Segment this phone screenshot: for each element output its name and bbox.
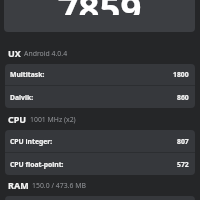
button[interactable]: CPU integer: <box>5 130 195 152</box>
staticText: Dalvik: <box>10 93 34 102</box>
staticText: UX <box>8 47 21 59</box>
staticText: Android 4.0.4 <box>24 49 68 58</box>
staticText: 1001 MHz (x2) <box>30 115 76 124</box>
staticText: 860 <box>177 93 189 102</box>
staticText: 150.0 / 473.6 MB <box>32 181 86 190</box>
staticText: 7859 <box>4 0 195 15</box>
button[interactable]: CPU float-point: <box>5 153 195 175</box>
staticText: Multitask: <box>10 70 45 79</box>
staticText: 572 <box>177 160 189 169</box>
button[interactable]: Dalvik: <box>5 86 195 108</box>
staticText: RAM <box>8 179 29 191</box>
button[interactable]: Multitask: <box>5 64 195 85</box>
staticText: CPU float-point: <box>10 160 64 169</box>
staticText: 1800 <box>173 70 189 79</box>
staticText: CPU integer: <box>10 137 53 146</box>
staticText: 807 <box>177 137 189 146</box>
staticText: CPU <box>8 113 27 125</box>
